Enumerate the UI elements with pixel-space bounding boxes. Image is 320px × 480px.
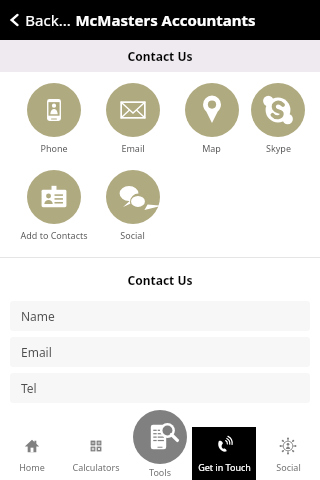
button[interactable]: Home	[0, 427, 64, 480]
staticText: Add to Contacts	[20, 229, 88, 241]
button[interactable]: Name	[10, 301, 310, 331]
button[interactable]: Back	[0, 6, 75, 34]
staticText: Tel	[21, 380, 37, 396]
button[interactable]: Tools	[133, 410, 187, 478]
button[interactable]: Map	[172, 83, 251, 154]
staticText: McMasters Accountants	[75, 10, 256, 30]
button[interactable]: Skype	[251, 83, 305, 154]
staticText: Calculators	[72, 461, 120, 473]
staticText: Home	[19, 461, 45, 473]
staticText: Tools	[149, 466, 171, 478]
staticText: Contact Us	[10, 272, 310, 288]
staticText: Social	[276, 461, 301, 473]
staticText: Social	[120, 229, 145, 241]
button[interactable]: Get in Touch	[192, 427, 256, 480]
staticText: Back...	[25, 10, 71, 30]
staticText: Name	[21, 308, 55, 324]
button[interactable]: Tel	[10, 373, 310, 403]
staticText: Map	[202, 142, 221, 154]
button[interactable]: Calculators	[64, 427, 128, 480]
staticText: Skype	[266, 142, 291, 154]
staticText: Get in Touch	[198, 461, 251, 473]
button[interactable]: Social	[93, 170, 172, 241]
staticText: Contact Us	[127, 48, 193, 64]
staticText: Email	[21, 344, 52, 360]
button[interactable]: Email	[93, 83, 172, 154]
button[interactable]: Social	[256, 427, 320, 480]
button[interactable]: Phone	[14, 83, 93, 154]
staticText: Phone	[40, 142, 68, 154]
button[interactable]: Email	[10, 337, 310, 367]
button[interactable]: Add to Contacts	[14, 170, 93, 241]
staticText: Email	[121, 142, 145, 154]
